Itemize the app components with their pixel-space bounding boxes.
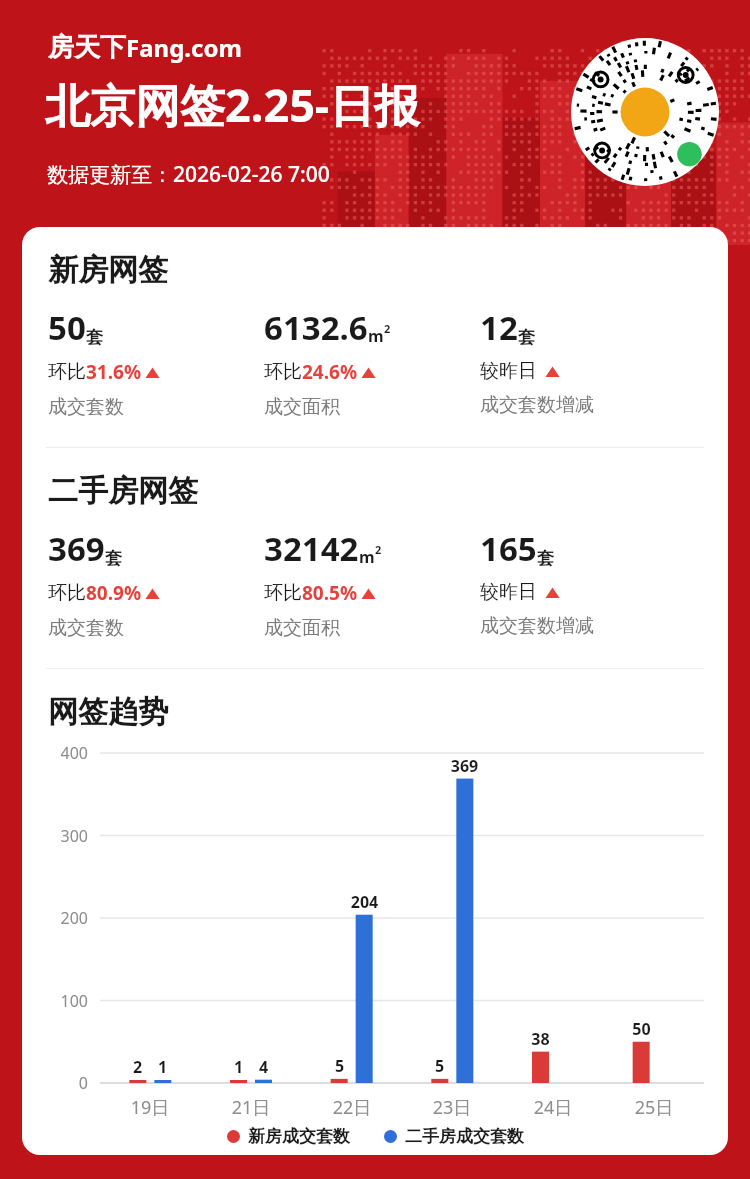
staticText: 12: [480, 305, 518, 350]
button[interactable]: Scan mini program code: [571, 38, 719, 186]
staticText: 24日: [517, 1095, 589, 1120]
staticText: 较昨日: [480, 359, 537, 383]
staticText: m: [359, 546, 375, 568]
staticText: 套: [86, 327, 103, 348]
staticText: 二手房成交套数: [405, 1126, 524, 1147]
staticText: 1: [216, 1056, 261, 1078]
staticText: 1: [140, 1056, 185, 1078]
staticText: 204: [342, 891, 387, 913]
staticText: 套: [518, 327, 535, 348]
staticText: 环比: [48, 581, 86, 605]
staticText: 22日: [316, 1095, 388, 1120]
staticText: 19日: [114, 1095, 186, 1120]
staticText: 新房成交套数: [248, 1126, 350, 1147]
staticText: 80.9%: [86, 580, 142, 606]
staticText: 5: [417, 1055, 462, 1077]
button[interactable]: 12: [480, 305, 718, 417]
staticText: 50: [619, 1018, 664, 1040]
staticText: 套: [537, 548, 554, 569]
staticText: 38: [518, 1028, 563, 1050]
staticText: 23日: [416, 1095, 488, 1120]
button[interactable]: 二手房成交套数: [384, 1126, 524, 1147]
staticText: 成交套数: [48, 616, 124, 640]
staticText: 房天下: [48, 31, 126, 64]
staticText: 成交套数增减: [480, 393, 594, 417]
staticText: 200: [40, 907, 88, 929]
staticText: 24.6%: [302, 359, 358, 385]
staticText: 成交套数: [48, 395, 124, 419]
staticText: 21日: [215, 1095, 287, 1120]
button[interactable]: 369: [48, 526, 264, 640]
staticText: 369: [48, 526, 105, 571]
button[interactable]: 165: [480, 526, 718, 638]
staticText: 31.6%: [86, 359, 142, 385]
staticText: 环比: [48, 360, 86, 384]
staticText: 80.5%: [302, 580, 358, 606]
staticText: 50: [48, 305, 86, 350]
staticText: 新房网签: [48, 251, 168, 289]
staticText: 0: [40, 1072, 88, 1094]
staticText: 369: [442, 755, 487, 777]
staticText: 32142: [264, 526, 359, 571]
staticText: 较昨日: [480, 580, 537, 604]
staticText: 2: [384, 321, 391, 336]
staticText: 成交面积: [264, 616, 340, 640]
button[interactable]: 32142: [264, 526, 480, 640]
staticText: 165: [480, 526, 537, 571]
staticText: m: [368, 325, 384, 347]
staticText: 2: [115, 1056, 160, 1078]
button[interactable]: 新房成交套数: [227, 1126, 350, 1147]
staticText: 套: [105, 548, 122, 569]
staticText: 数据更新至：2026-02-26 7:00: [47, 160, 330, 189]
staticText: 成交套数增减: [480, 614, 594, 638]
staticText: 4: [241, 1056, 286, 1078]
staticText: 2: [375, 542, 382, 557]
staticText: 环比: [264, 360, 302, 384]
staticText: 300: [40, 825, 88, 847]
staticText: 环比: [264, 581, 302, 605]
staticText: 5: [317, 1055, 362, 1077]
staticText: 成交面积: [264, 395, 340, 419]
staticText: 100: [40, 990, 88, 1012]
button[interactable]: 6132.6: [264, 305, 480, 419]
staticText: 6132.6: [264, 305, 368, 350]
staticText: 二手房网签: [48, 472, 198, 510]
staticText: 400: [40, 742, 88, 764]
staticText: Fang.com: [126, 31, 242, 64]
button[interactable]: 50: [48, 305, 264, 419]
staticText: 25日: [618, 1095, 690, 1120]
staticText: 网签趋势: [48, 693, 168, 731]
staticText: 北京网签2.25-日报: [45, 74, 420, 135]
